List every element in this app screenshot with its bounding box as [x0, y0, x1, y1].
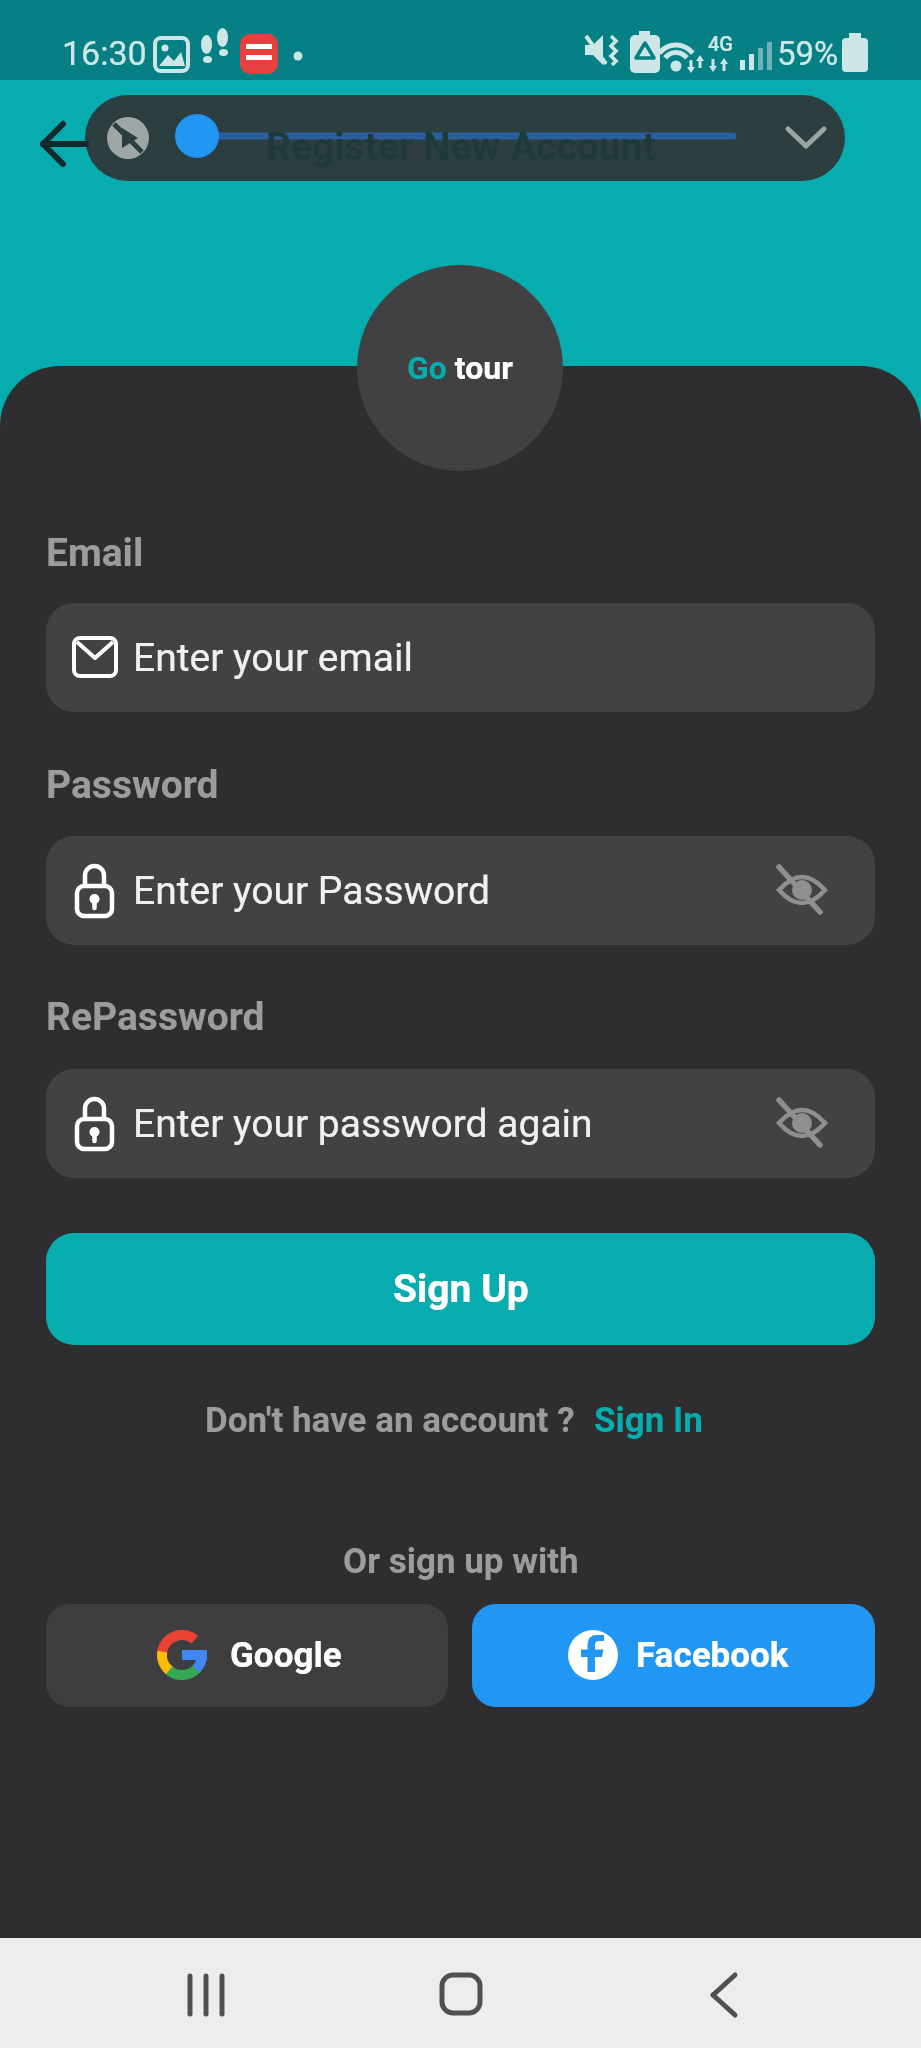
- staticText: 59%: [777, 34, 839, 73]
- staticText: Enter your Password: [133, 868, 491, 914]
- button[interactable]: [777, 867, 827, 917]
- button[interactable]: Enter your password again: [46, 1069, 875, 1178]
- staticText: Or sign up with: [343, 1541, 579, 1582]
- button[interactable]: Sign Up: [46, 1233, 875, 1345]
- staticText: 16:30: [62, 33, 147, 73]
- button[interactable]: Google: [46, 1604, 448, 1707]
- button[interactable]: Facebook: [472, 1604, 875, 1707]
- staticText: 4G: [708, 32, 733, 55]
- button[interactable]: [40, 120, 88, 168]
- button[interactable]: Sign In: [594, 1400, 703, 1441]
- button[interactable]: Enter your Password: [46, 836, 875, 945]
- button[interactable]: [441, 1974, 483, 2016]
- staticText: RePassword: [46, 994, 265, 1040]
- button[interactable]: [706, 1973, 748, 2015]
- staticText: Google: [230, 1635, 342, 1676]
- button[interactable]: Enter your email: [46, 603, 875, 712]
- staticText: Don't have an account ?: [205, 1400, 575, 1441]
- button[interactable]: [186, 1974, 228, 2016]
- staticText: Email: [46, 530, 144, 576]
- staticText: Facebook: [636, 1635, 789, 1676]
- staticText: Register New Account: [266, 124, 656, 170]
- staticText: Sign Up: [393, 1266, 529, 1312]
- button[interactable]: Go tour: [357, 265, 563, 471]
- button[interactable]: [777, 1100, 827, 1150]
- staticText: Enter your email: [133, 635, 413, 681]
- staticText: Password: [46, 762, 219, 808]
- staticText: Enter your password again: [133, 1101, 593, 1147]
- staticText: Go tour: [407, 349, 513, 387]
